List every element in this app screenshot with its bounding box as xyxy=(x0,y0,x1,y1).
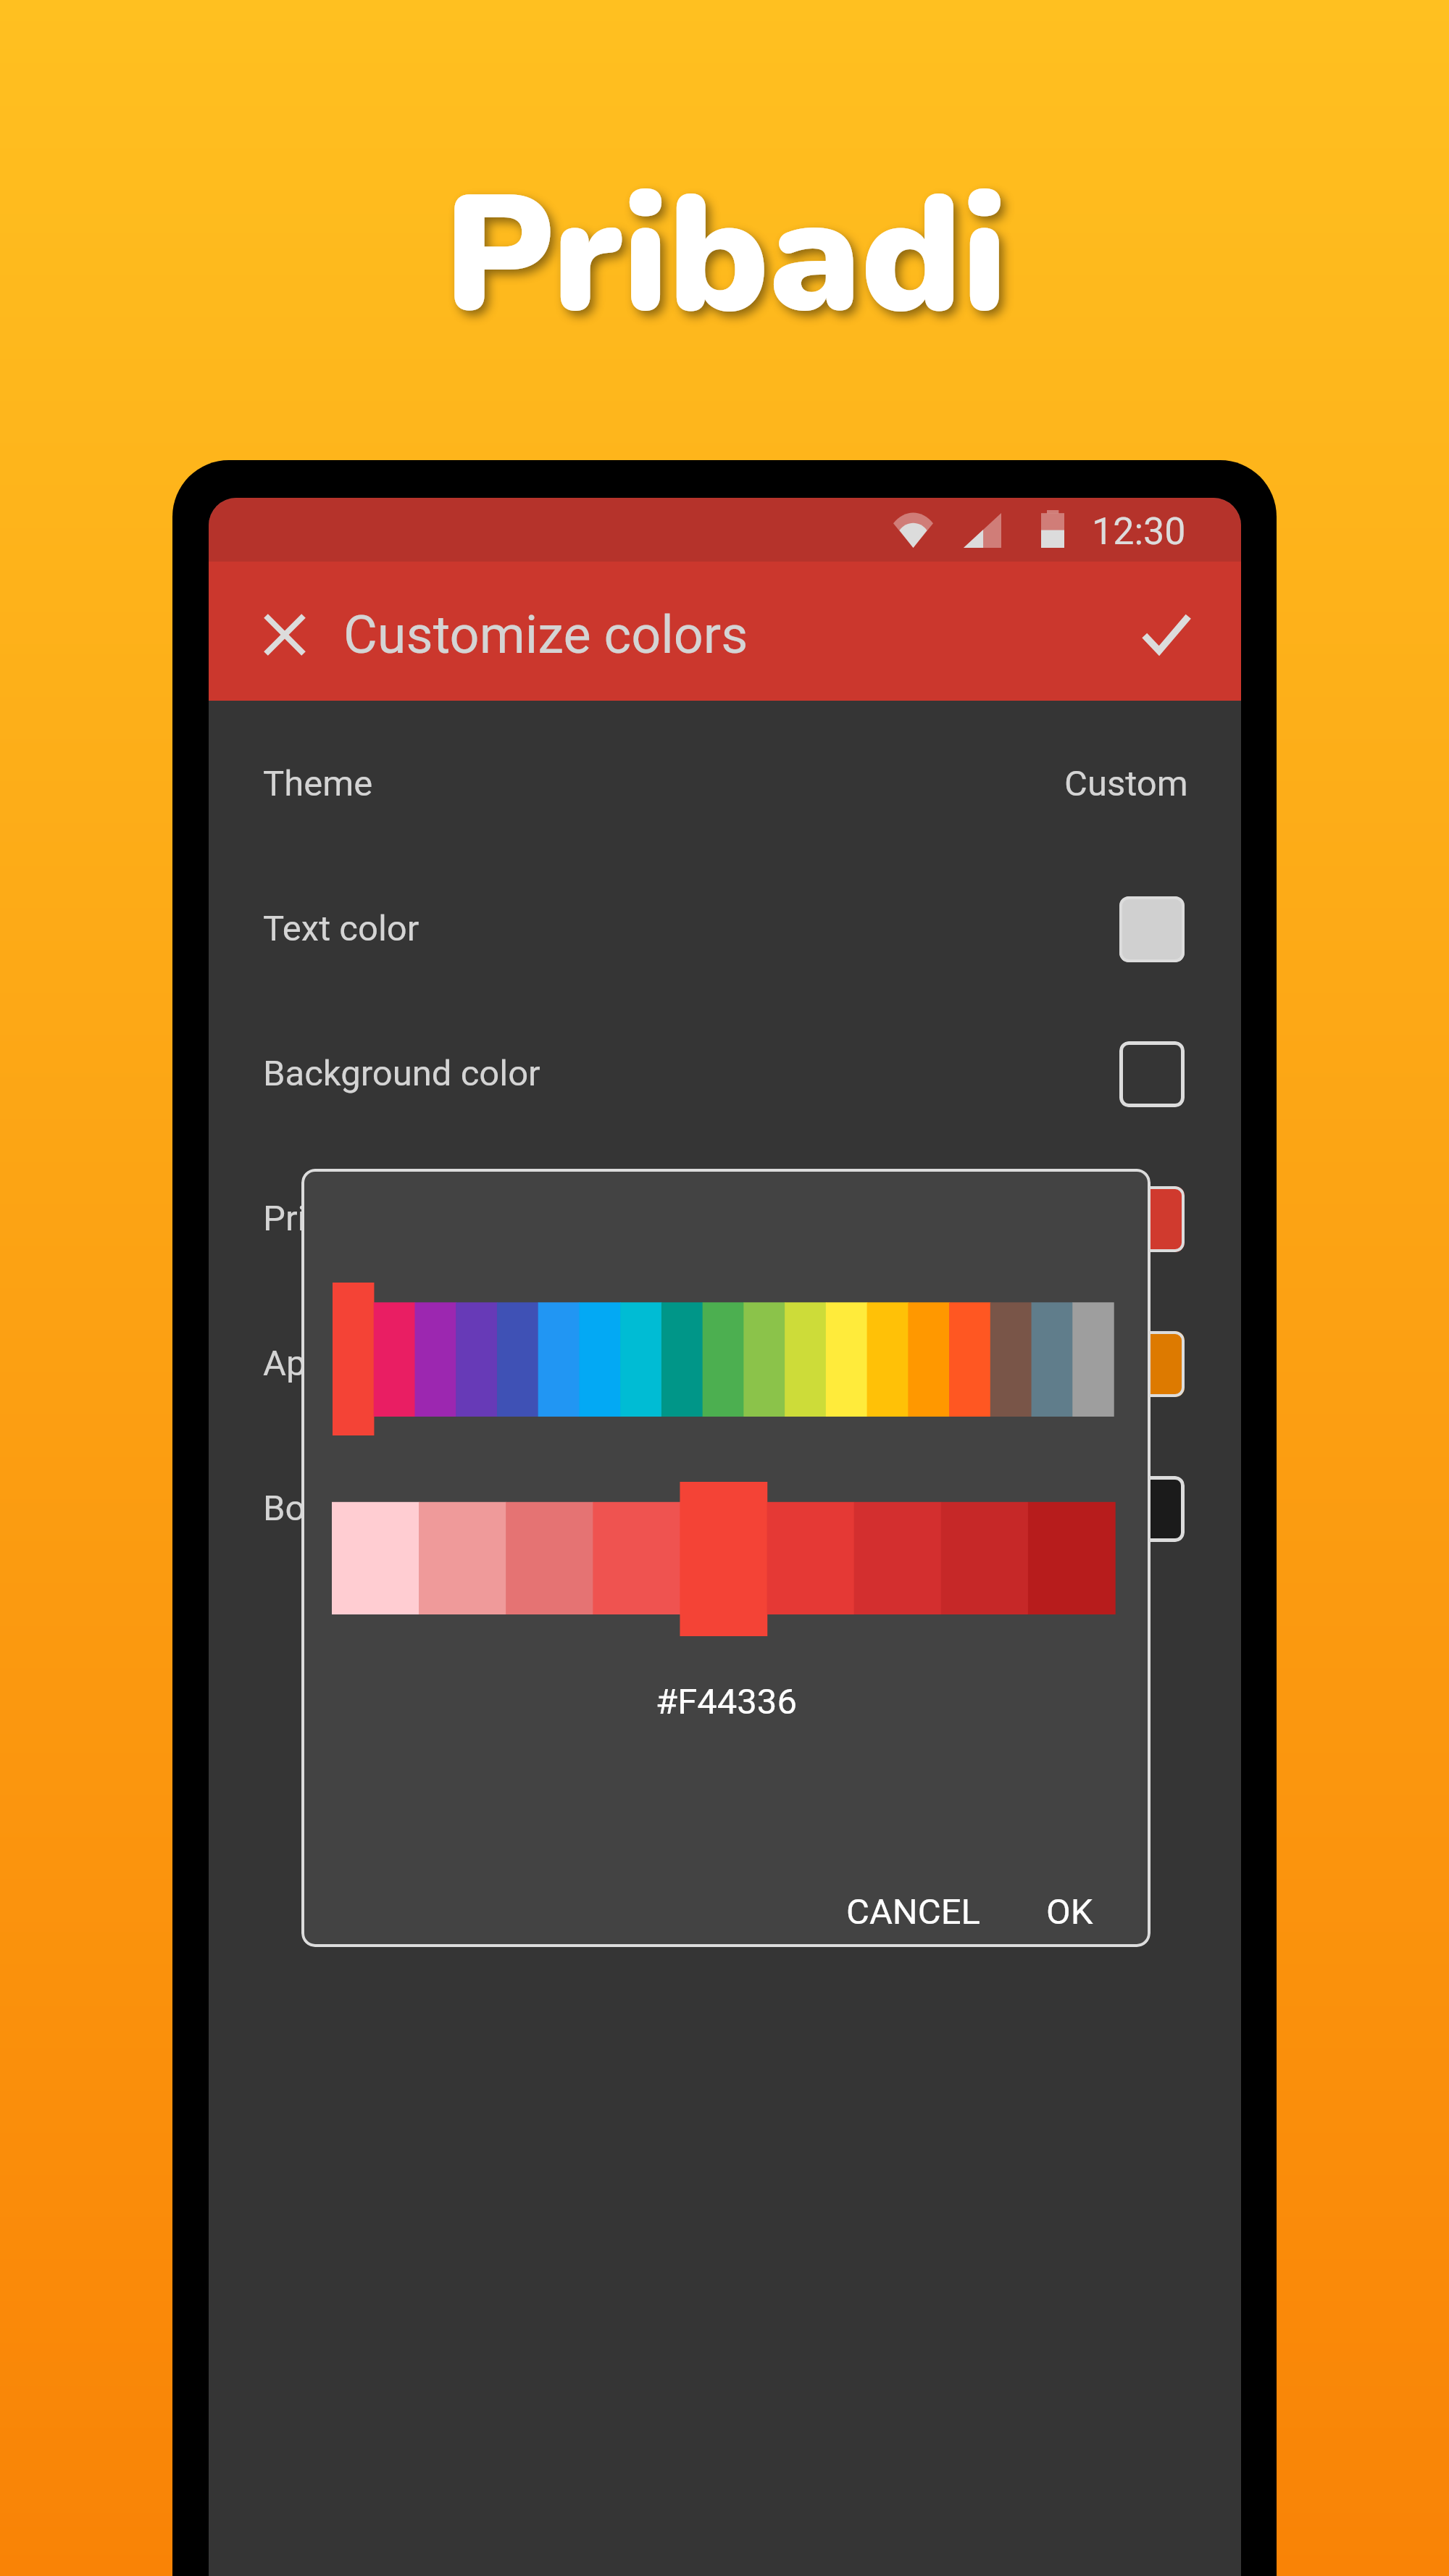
staticText: CANCEL xyxy=(846,1891,980,1933)
staticText: Customize colors xyxy=(343,604,748,665)
staticText: Primary color xyxy=(263,1198,475,1239)
staticText: 12:30 xyxy=(1092,509,1186,554)
button[interactable]: Confirm xyxy=(1130,597,1203,670)
button[interactable]: Theme xyxy=(209,712,1241,856)
button[interactable]: Background color xyxy=(209,1001,1241,1146)
staticText: Pribadi xyxy=(444,146,1008,367)
button[interactable]: Close xyxy=(249,599,321,671)
button[interactable]: App icon color xyxy=(209,1291,1241,1436)
staticText: Theme xyxy=(263,763,373,804)
staticText: OK xyxy=(1046,1891,1093,1933)
button[interactable]: OK xyxy=(1017,1871,1122,1947)
button[interactable]: CANCEL xyxy=(817,1871,1009,1947)
staticText: Custom xyxy=(1064,763,1188,804)
staticText: App icon color xyxy=(263,1343,490,1384)
button[interactable]: Primary color xyxy=(209,1146,1241,1291)
button[interactable]: Bottom bar color xyxy=(209,1436,1241,1581)
staticText: Text color xyxy=(263,908,419,949)
staticText: Background color xyxy=(263,1053,540,1094)
staticText: Bottom bar color xyxy=(263,1488,529,1529)
staticText: #F44336 xyxy=(656,1681,797,1722)
button[interactable]: Text color xyxy=(209,856,1241,1001)
